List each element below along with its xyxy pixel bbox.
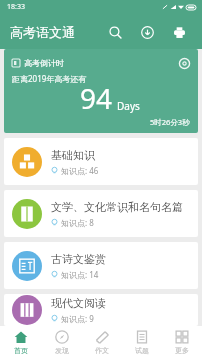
button[interactable]: 文学、文化常识和名句名篇 bbox=[4, 190, 198, 237]
staticText: 更多 bbox=[175, 346, 189, 355]
staticText: 发现 bbox=[55, 346, 69, 355]
button[interactable]: Print bbox=[166, 19, 192, 45]
staticText: 距离2019年高考还有 bbox=[12, 73, 87, 84]
button[interactable]: 高考倒计时 bbox=[4, 49, 198, 133]
staticText: 文学、文化常识和名句名篇 bbox=[51, 200, 183, 214]
staticText: 古诗文鉴赏 bbox=[51, 252, 106, 266]
button[interactable]: 首页 bbox=[0, 326, 41, 359]
staticText: 18:33 bbox=[7, 2, 25, 12]
staticText: 知识点: 8 bbox=[61, 217, 94, 228]
staticText: 基础知识 bbox=[51, 148, 95, 162]
staticText: 作文 bbox=[95, 346, 109, 355]
staticText: 高考倒计时 bbox=[24, 58, 177, 68]
button[interactable]: 试题 bbox=[122, 326, 162, 359]
button[interactable]: Settings bbox=[177, 56, 191, 70]
button[interactable]: 古诗文鉴赏 bbox=[4, 242, 198, 289]
button[interactable]: 作文 bbox=[82, 326, 122, 359]
staticText: 首页 bbox=[14, 346, 28, 355]
staticText: 知识点: 9 bbox=[61, 313, 94, 324]
staticText: 试题 bbox=[135, 346, 149, 355]
staticText: 94 bbox=[80, 79, 113, 117]
staticText: 高考语文通 bbox=[10, 24, 102, 40]
staticText: 5时26分3秒 bbox=[150, 117, 190, 127]
button[interactable]: 现代文阅读 bbox=[4, 294, 198, 326]
button[interactable]: 更多 bbox=[162, 326, 202, 359]
staticText: 知识点: 14 bbox=[61, 269, 99, 280]
button[interactable]: 发现 bbox=[41, 326, 82, 359]
button[interactable]: 基础知识 bbox=[4, 138, 198, 185]
staticText: Days bbox=[117, 99, 140, 113]
button[interactable]: Download bbox=[134, 19, 160, 45]
staticText: 现代文阅读 bbox=[51, 296, 106, 310]
staticText: 知识点: 46 bbox=[61, 165, 99, 176]
button[interactable]: Search bbox=[102, 19, 128, 45]
